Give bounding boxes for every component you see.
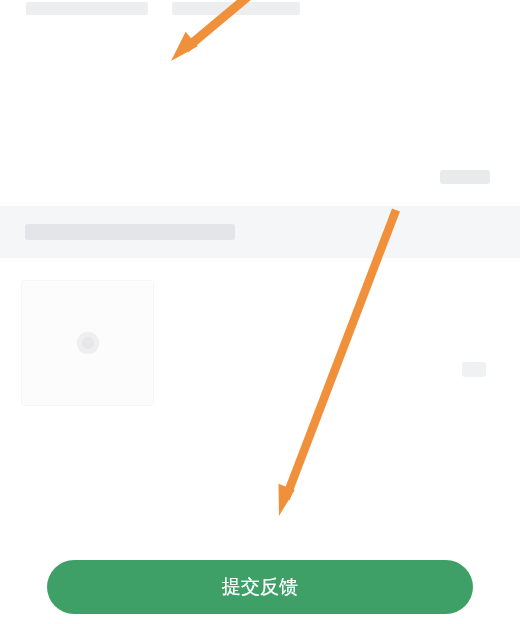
staticText: 提交反馈 — [222, 575, 298, 599]
button[interactable]: 提交反馈 — [47, 560, 473, 614]
